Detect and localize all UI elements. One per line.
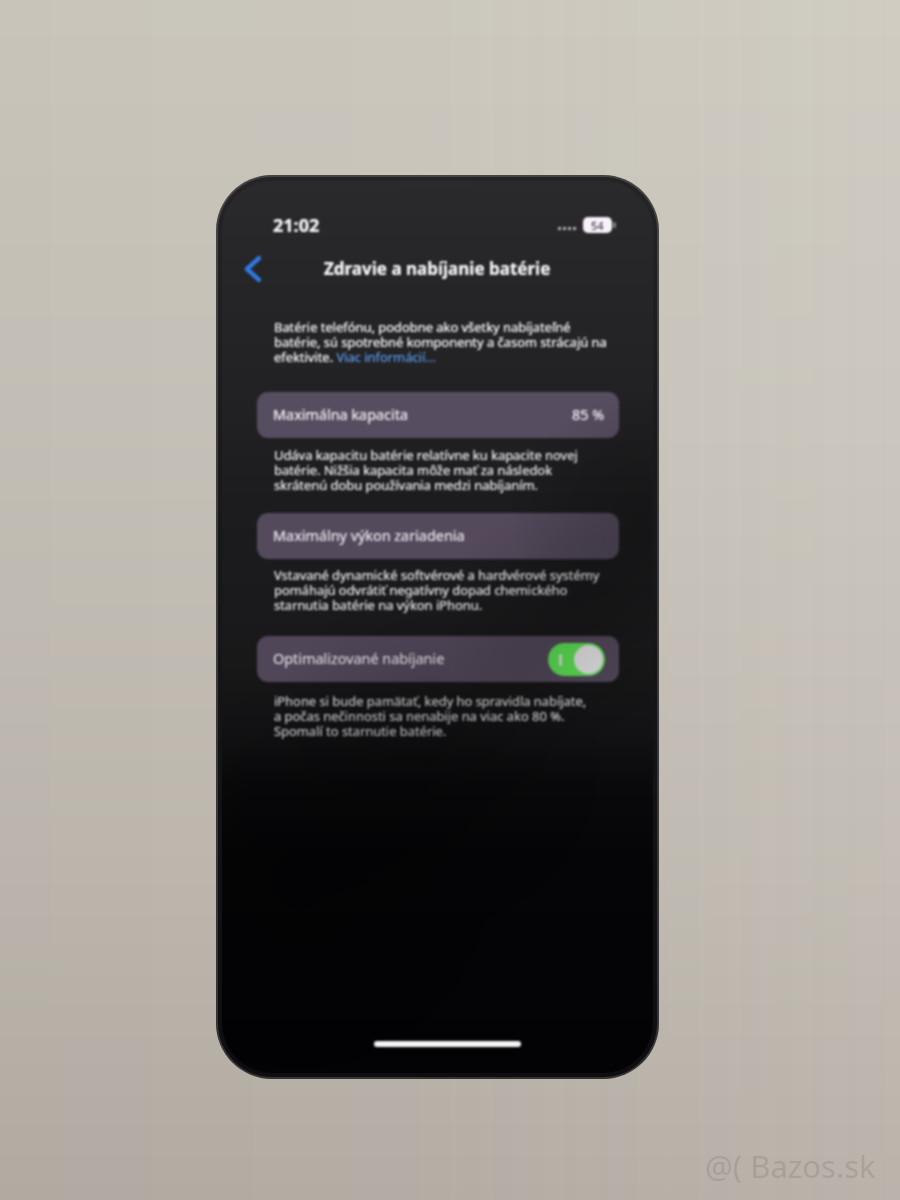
staticText: Zdravie a nabíjanie batérie bbox=[324, 257, 551, 280]
staticText: Batérie telefónu, podobne ako všetky nab… bbox=[274, 318, 607, 366]
button[interactable]: Maximálny výkon zariadenia bbox=[257, 513, 619, 559]
staticText: 54 bbox=[591, 218, 604, 233]
button[interactable]: Maximálna kapacita bbox=[257, 392, 619, 438]
staticText: Optimalizované nabíjanie bbox=[273, 649, 445, 669]
staticText: @( Bazos.sk bbox=[705, 1145, 876, 1187]
button[interactable]: Optimalizované nabíjanie bbox=[548, 643, 605, 676]
staticText: 85 % bbox=[572, 405, 605, 425]
button[interactable]: Back bbox=[234, 250, 272, 288]
button[interactable]: Optimalizované nabíjanie bbox=[257, 636, 619, 682]
staticText: 21:02 bbox=[273, 213, 320, 238]
staticText: iPhone si bude pamätať, kedy ho spravidl… bbox=[274, 692, 587, 740]
staticText: Vstavané dynamické softvérové a hardvéro… bbox=[274, 566, 600, 614]
staticText: Udáva kapacitu batérie relatívne ku kapa… bbox=[274, 446, 578, 494]
staticText: Maximálny výkon zariadenia bbox=[273, 526, 465, 546]
staticText: Maximálna kapacita bbox=[273, 405, 408, 425]
